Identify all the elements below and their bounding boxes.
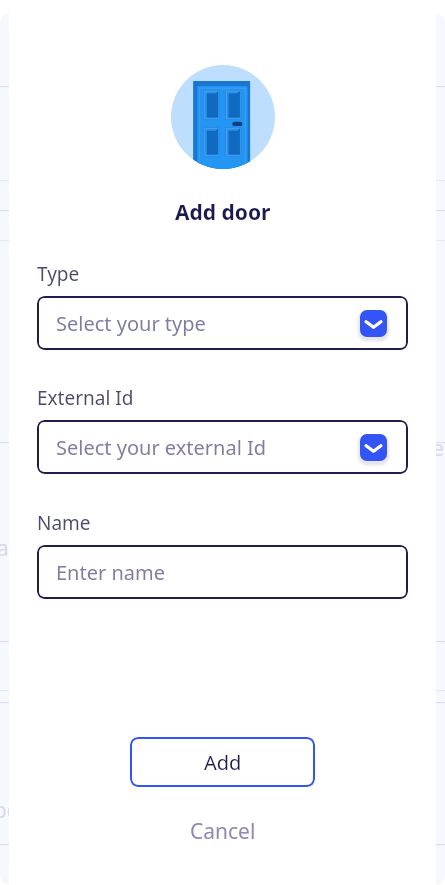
staticText: e	[432, 434, 444, 463]
staticText: Cancel	[190, 817, 256, 846]
button[interactable]: Open dropdown	[360, 310, 387, 337]
button[interactable]: Open dropdown	[360, 434, 387, 461]
staticText: Select your type	[56, 310, 206, 337]
button[interactable]: Select your type	[37, 296, 408, 350]
staticText: Type	[37, 261, 80, 287]
staticText: Add	[204, 749, 242, 776]
button[interactable]: Cancel	[190, 817, 256, 846]
staticText: External Id	[37, 385, 134, 411]
staticText: Name	[37, 510, 91, 536]
staticText: Add door	[175, 198, 271, 227]
staticText: Select your external Id	[56, 434, 267, 461]
staticText: oc	[0, 796, 17, 825]
staticText: Enter name	[56, 559, 165, 586]
staticText: a	[0, 534, 9, 563]
button[interactable]: Enter name	[37, 545, 408, 599]
button[interactable]: Add	[130, 737, 315, 787]
button[interactable]: Select your external Id	[37, 420, 408, 474]
